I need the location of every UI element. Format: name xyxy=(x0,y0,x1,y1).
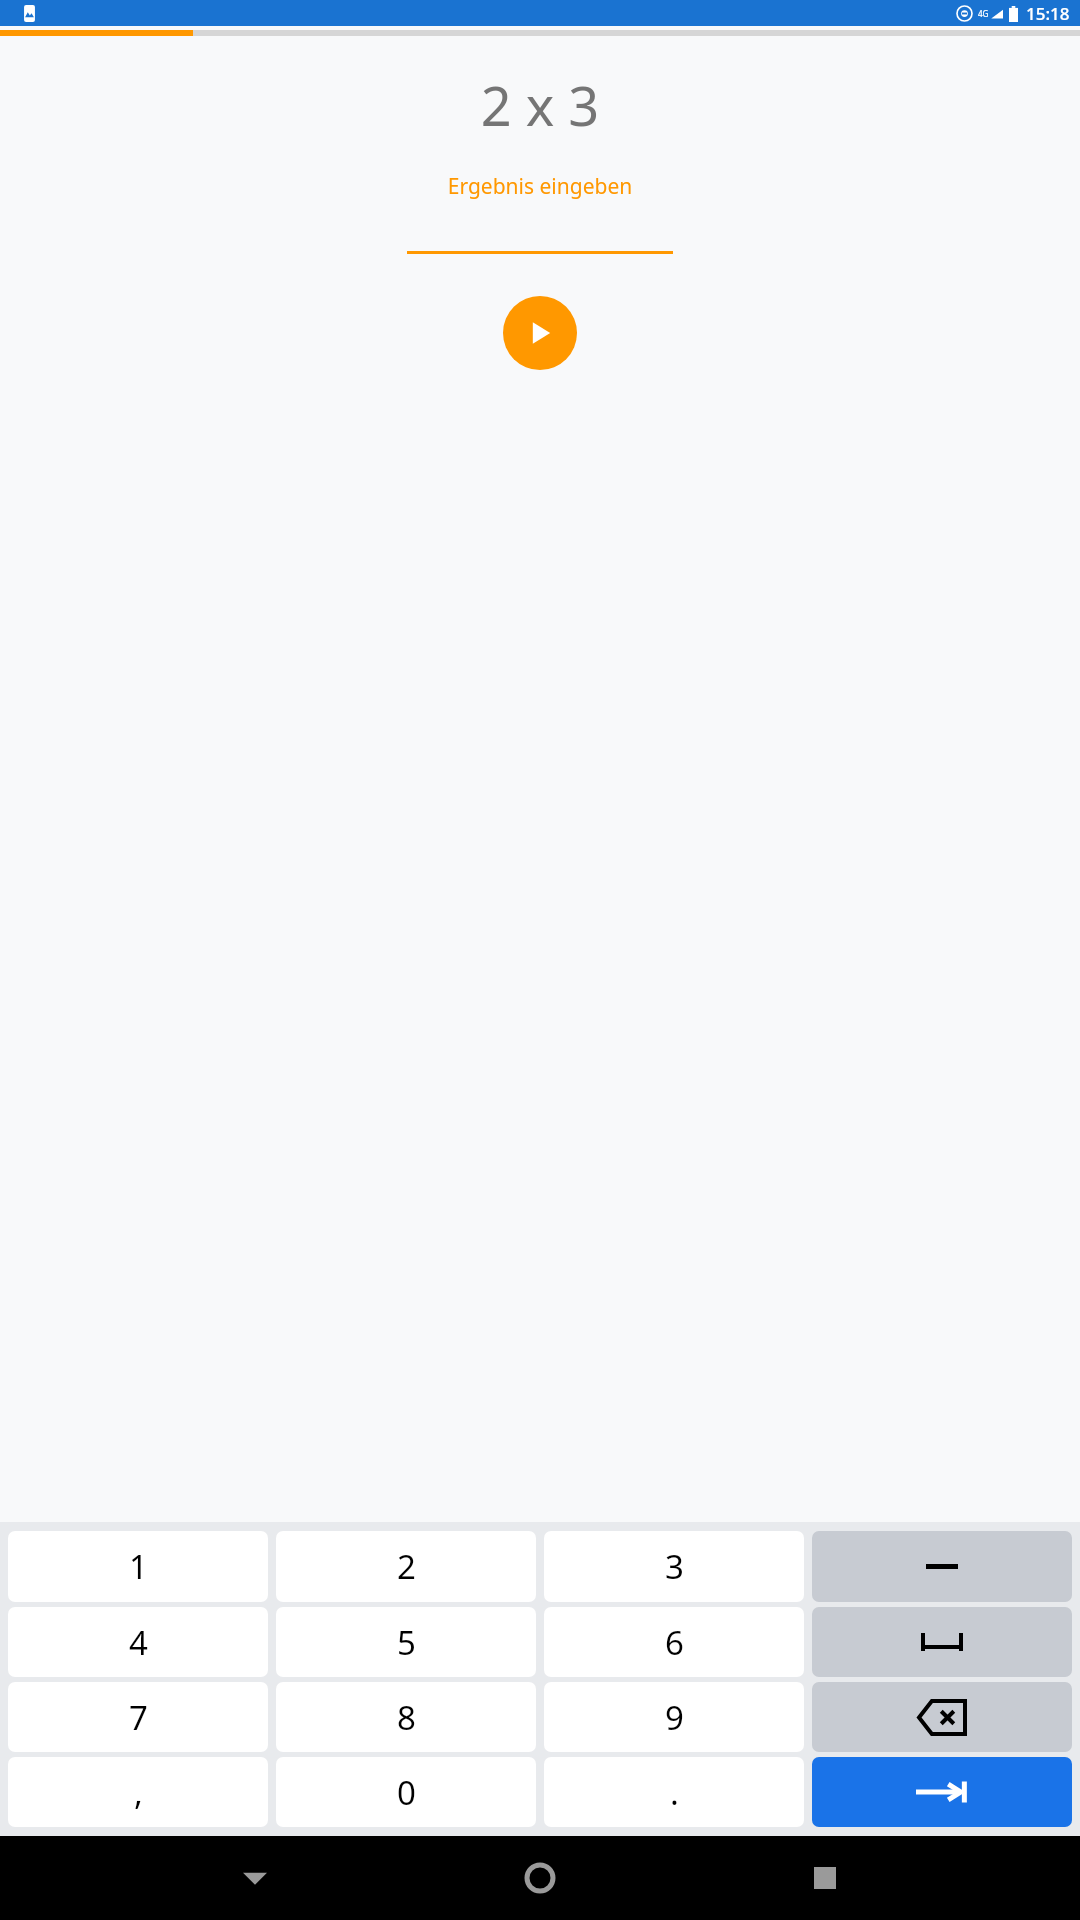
button[interactable]: 5 xyxy=(276,1607,536,1677)
staticText: 7 xyxy=(129,1695,148,1740)
staticText: Ergebnis eingeben xyxy=(0,172,1080,201)
button[interactable]: 6 xyxy=(544,1607,804,1677)
staticText: 15:18 xyxy=(1026,2,1070,25)
staticText: 4G xyxy=(978,8,989,19)
button[interactable]: 7 xyxy=(8,1682,268,1752)
button[interactable]: Minus xyxy=(812,1531,1072,1602)
button[interactable]: Space xyxy=(812,1607,1072,1677)
button[interactable]: Enter xyxy=(812,1757,1072,1827)
staticText: 6 xyxy=(665,1620,684,1665)
staticText: 9 xyxy=(665,1695,684,1740)
staticText: 5 xyxy=(397,1620,416,1665)
staticText: 2 xyxy=(397,1544,416,1589)
button[interactable]: 1 xyxy=(8,1531,268,1602)
button[interactable]: , xyxy=(8,1757,268,1827)
button[interactable]: Play xyxy=(503,296,577,370)
button[interactable]: Recents xyxy=(795,1848,855,1908)
staticText: 8 xyxy=(397,1695,416,1740)
staticText: . xyxy=(670,1770,679,1815)
button[interactable]: Home xyxy=(510,1848,570,1908)
button[interactable]: 4 xyxy=(8,1607,268,1677)
button[interactable]: 2 xyxy=(276,1531,536,1602)
button[interactable]: Delete xyxy=(812,1682,1072,1752)
button[interactable]: . xyxy=(544,1757,804,1827)
staticText: , xyxy=(134,1770,143,1815)
button[interactable]: 0 xyxy=(276,1757,536,1827)
button[interactable]: 8 xyxy=(276,1682,536,1752)
staticText: 3 xyxy=(665,1544,684,1589)
staticText: 1 xyxy=(129,1544,148,1589)
button[interactable]: 9 xyxy=(544,1682,804,1752)
button[interactable]: 3 xyxy=(544,1531,804,1602)
button[interactable]: Back xyxy=(225,1848,285,1908)
staticText: 4 xyxy=(129,1620,148,1665)
staticText: 2 x 3 xyxy=(0,68,1080,142)
staticText: 0 xyxy=(397,1770,416,1815)
